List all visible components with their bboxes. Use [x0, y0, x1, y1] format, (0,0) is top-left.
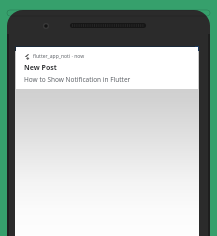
staticText: New Post [24, 63, 57, 73]
staticText: flutter_app_noti · now [33, 53, 85, 60]
staticText: How to Show Notification in Flutter [24, 75, 131, 84]
other: App icon [24, 54, 30, 60]
button[interactable]: App icon [16, 47, 198, 89]
